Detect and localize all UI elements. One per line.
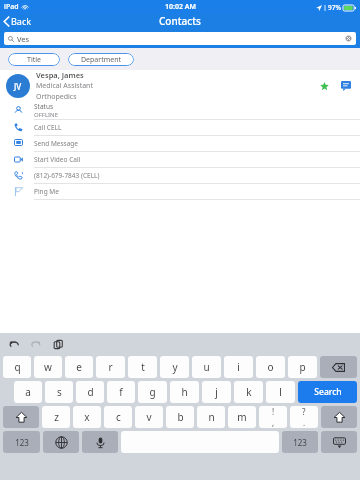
staticText: Department — [81, 55, 122, 65]
button[interactable]: Ping Me — [0, 184, 360, 199]
button[interactable]: r — [96, 356, 125, 378]
button[interactable]: Title — [8, 53, 60, 66]
staticText: a — [25, 385, 31, 399]
button[interactable]: k — [234, 381, 263, 403]
button[interactable]: Ves — [4, 32, 356, 45]
staticText: n — [208, 410, 215, 424]
staticText: g — [149, 385, 156, 399]
button[interactable]: s — [45, 381, 73, 403]
button[interactable]: d — [76, 381, 104, 403]
staticText: r — [108, 360, 113, 374]
button[interactable]: Call CELL — [0, 120, 360, 135]
button[interactable]: Back — [0, 14, 38, 28]
staticText: 10:02 AM — [165, 2, 196, 12]
button[interactable]: l — [266, 381, 295, 403]
staticText: s — [57, 385, 62, 399]
staticText: Ves — [17, 34, 30, 44]
button[interactable]: a — [14, 381, 42, 403]
button[interactable]: p — [288, 356, 317, 378]
button[interactable]: Dictate — [82, 431, 118, 453]
button[interactable]: ! — [259, 406, 287, 428]
button[interactable]: Paste — [50, 336, 66, 352]
staticText: Back — [11, 15, 32, 27]
button[interactable]: Switch keyboard — [43, 431, 79, 453]
staticText: Status — [34, 102, 54, 111]
staticText: Contacts — [159, 14, 201, 28]
staticText: Vespa, James — [36, 70, 84, 80]
staticText: j — [215, 385, 218, 399]
button[interactable]: c — [104, 406, 132, 428]
button[interactable]: 123 — [3, 431, 40, 453]
button[interactable]: j — [202, 381, 231, 403]
staticText: 123 — [293, 437, 307, 448]
staticText: u — [203, 360, 210, 374]
staticText: i — [237, 360, 240, 374]
staticText: JV — [14, 81, 22, 92]
staticText: Start Video Call — [34, 155, 81, 164]
staticText: Call CELL — [34, 123, 62, 132]
button[interactable]: z — [42, 406, 70, 428]
staticText: Title — [27, 55, 41, 65]
button[interactable]: Send message — [338, 78, 354, 94]
button[interactable]: ? — [290, 406, 318, 428]
staticText: Orthopedics — [36, 92, 77, 102]
staticText: (812)-679-7843 (CELL) — [34, 171, 100, 180]
button[interactable]: Status — [0, 102, 360, 119]
staticText: y — [172, 360, 178, 374]
staticText: Ping Me — [34, 187, 59, 196]
button[interactable]: y — [160, 356, 189, 378]
button[interactable]: JV — [0, 70, 360, 102]
button[interactable]: w — [34, 356, 62, 378]
button[interactable]: b — [166, 406, 194, 428]
button[interactable]: Clear search — [345, 35, 352, 42]
button[interactable]: m — [228, 406, 256, 428]
staticText: e — [76, 360, 82, 374]
staticText: t — [141, 360, 145, 374]
button[interactable]: i — [224, 356, 253, 378]
button[interactable]: q — [3, 356, 31, 378]
button[interactable]: v — [135, 406, 163, 428]
staticText: c — [116, 410, 121, 424]
staticText: 123 — [15, 437, 29, 448]
staticText: l — [279, 385, 282, 399]
button[interactable]: Shift — [321, 406, 357, 428]
staticText: b — [177, 410, 184, 424]
staticText: q — [14, 360, 21, 374]
staticText: Medical Assistant — [36, 81, 93, 91]
button[interactable]: Undo — [6, 336, 22, 352]
button[interactable]: (812)-679-7843 (CELL) — [0, 168, 360, 183]
staticText: m — [237, 410, 247, 424]
staticText: k — [246, 385, 252, 399]
button[interactable]: Favorite — [316, 78, 332, 94]
button[interactable]: Start Video Call — [0, 152, 360, 167]
staticText: z — [54, 410, 59, 424]
staticText: f — [119, 385, 123, 399]
button[interactable]: g — [138, 381, 167, 403]
button[interactable]: Send Message — [0, 136, 360, 151]
staticText: . — [303, 417, 306, 428]
button[interactable]: u — [192, 356, 221, 378]
button[interactable]: Redo — [28, 336, 44, 352]
staticText: 97% — [328, 3, 341, 12]
staticText: , — [272, 417, 275, 428]
staticText: ! — [272, 406, 275, 417]
button[interactable]: h — [170, 381, 199, 403]
button[interactable]: t — [128, 356, 157, 378]
staticText: p — [299, 360, 306, 374]
button[interactable]: Backspace — [320, 356, 357, 378]
button[interactable]: Department — [68, 53, 134, 66]
button[interactable]: Shift — [3, 406, 39, 428]
button[interactable]: Search — [298, 381, 357, 403]
staticText: Send Message — [34, 139, 79, 148]
button[interactable]: f — [107, 381, 135, 403]
button[interactable]: n — [197, 406, 225, 428]
button[interactable]: Hide keyboard — [321, 431, 357, 453]
button[interactable]: o — [256, 356, 285, 378]
staticText: OFFLINE — [34, 111, 58, 119]
staticText: v — [146, 410, 152, 424]
button[interactable]: 123 — [282, 431, 318, 453]
button[interactable]: e — [65, 356, 93, 378]
button[interactable]: x — [73, 406, 101, 428]
staticText: o — [267, 360, 274, 374]
